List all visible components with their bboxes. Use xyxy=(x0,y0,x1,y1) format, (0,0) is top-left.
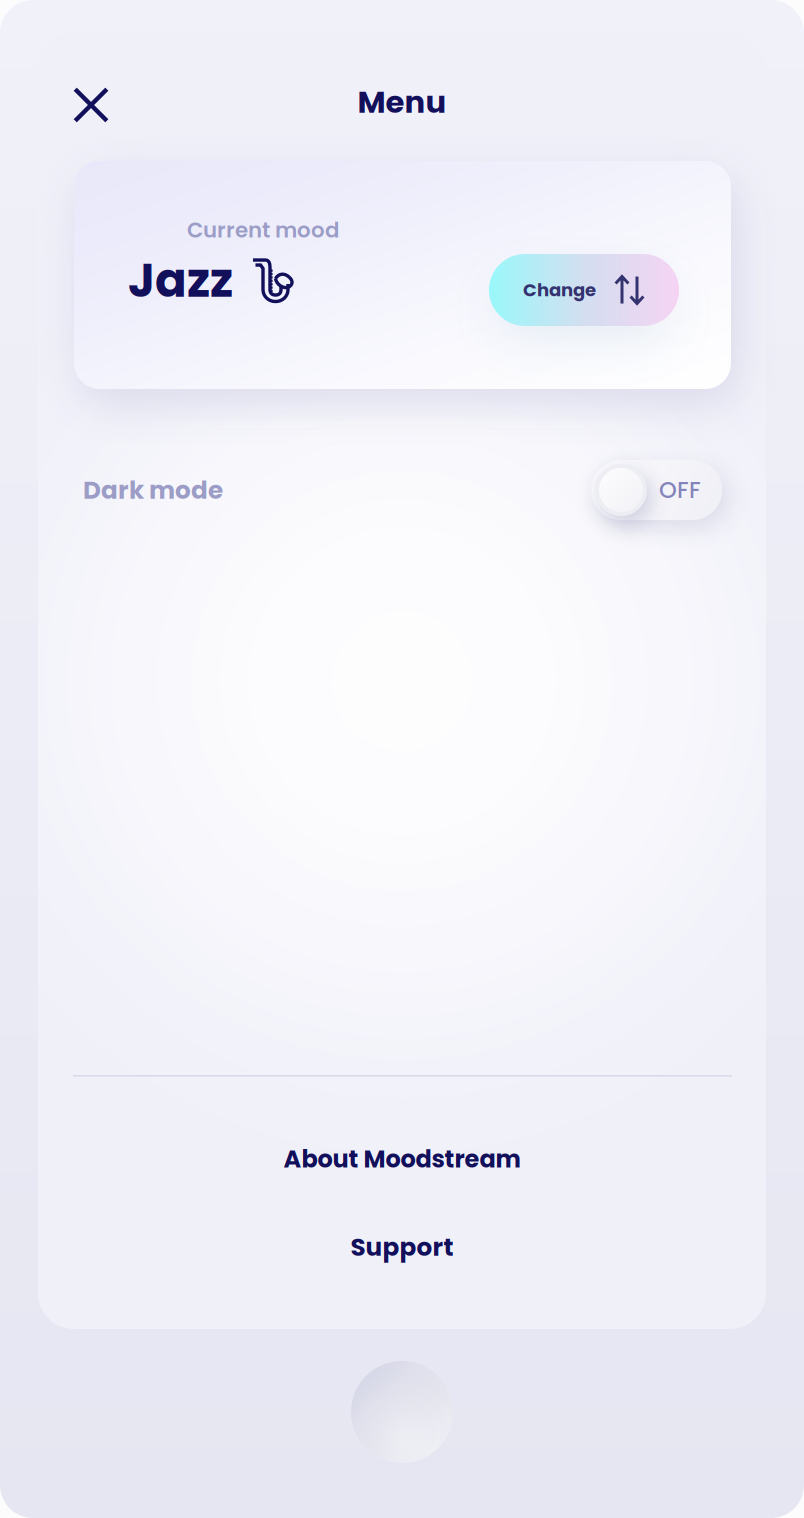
staticText: Menu xyxy=(357,80,446,123)
staticText: Support xyxy=(350,1230,453,1264)
button[interactable]: Home xyxy=(337,1347,467,1477)
staticText: About Moodstream xyxy=(283,1142,520,1176)
button[interactable]: Change xyxy=(489,254,679,326)
staticText: Current mood xyxy=(187,215,339,245)
button[interactable]: Close xyxy=(56,70,126,140)
staticText: OFF xyxy=(659,474,701,506)
staticText: Dark mode xyxy=(83,473,223,507)
button[interactable]: About Moodstream xyxy=(74,1132,730,1186)
button[interactable]: Support xyxy=(74,1220,730,1274)
button[interactable]: Dark mode, off xyxy=(591,460,722,520)
staticText: Change xyxy=(523,277,596,303)
staticText: Jazz xyxy=(128,248,233,313)
